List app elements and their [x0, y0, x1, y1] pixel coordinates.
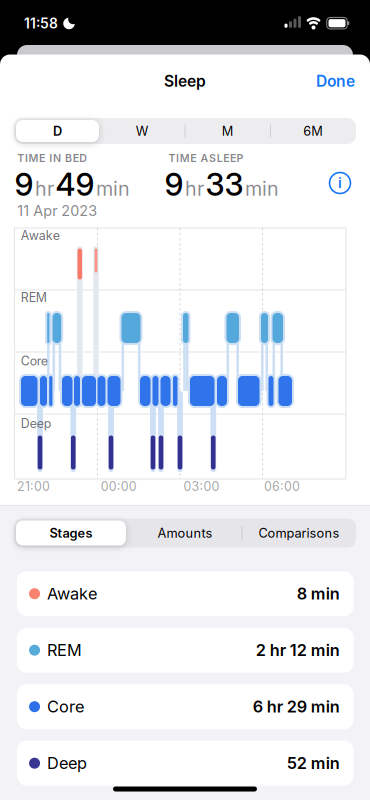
staticText: Comparisons — [258, 525, 339, 541]
button[interactable]: 6M — [273, 118, 353, 144]
staticText: Done — [316, 72, 355, 90]
staticText: hr — [185, 177, 204, 200]
staticText: REM — [47, 640, 82, 660]
staticText: min — [96, 177, 130, 200]
staticText: Sleep — [164, 72, 206, 90]
staticText: 52 min — [287, 753, 340, 773]
staticText: 11:58 — [24, 15, 58, 32]
staticText: min — [245, 177, 279, 200]
button[interactable] — [16, 120, 99, 142]
staticText: M — [222, 123, 234, 139]
button[interactable]: Deep — [17, 741, 354, 786]
staticText: 11 Apr 2023 — [17, 202, 97, 219]
staticText: 33 — [205, 166, 243, 203]
staticText: Core — [47, 697, 84, 717]
staticText: D — [53, 123, 62, 139]
button[interactable]: W — [102, 118, 182, 144]
staticText: REM — [21, 290, 47, 305]
staticText: 9 — [164, 166, 183, 203]
staticText: 00:00 — [101, 479, 137, 494]
button[interactable]: M — [188, 118, 268, 144]
staticText: 03:00 — [183, 479, 219, 494]
staticText: Stages — [49, 525, 92, 541]
staticText: Core — [21, 353, 48, 368]
button[interactable]: REM — [17, 628, 354, 673]
staticText: 2 hr 12 min — [256, 640, 340, 660]
staticText: 9 — [14, 166, 33, 203]
button[interactable]: Done — [305, 66, 365, 96]
staticText: TIME IN BED — [17, 151, 87, 164]
staticText: W — [136, 123, 149, 139]
staticText: Amounts — [157, 525, 212, 541]
staticText: Awake — [47, 584, 97, 604]
button[interactable]: Awake — [17, 571, 354, 616]
staticText: 8 min — [297, 584, 340, 604]
button[interactable]: Core — [17, 684, 354, 729]
staticText: Deep — [21, 416, 52, 431]
staticText: 49 — [55, 166, 94, 203]
staticText: 6M — [303, 123, 323, 139]
staticText: 21:00 — [17, 479, 50, 494]
staticText: 06:00 — [264, 479, 300, 494]
button[interactable] — [16, 520, 126, 545]
button[interactable]: i — [325, 168, 355, 198]
staticText: Awake — [21, 228, 60, 243]
staticText: 6 hr 29 min — [253, 697, 340, 717]
staticText: i — [338, 174, 342, 191]
staticText: hr — [35, 177, 54, 200]
staticText: TIME ASLEEP — [168, 151, 243, 164]
button[interactable]: Comparisons — [244, 518, 354, 547]
button[interactable]: Amounts — [135, 518, 235, 547]
staticText: Deep — [47, 753, 87, 773]
